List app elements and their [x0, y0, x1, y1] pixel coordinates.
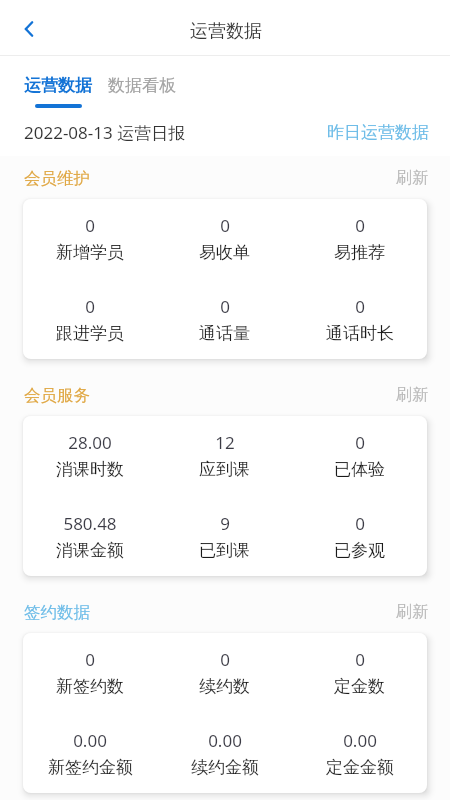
button[interactable]: 昨日运营数据: [327, 122, 429, 143]
staticText: 2022-08-13 运营日报: [24, 121, 186, 144]
staticText: 已参观: [334, 540, 385, 561]
staticText: 0.00: [208, 729, 242, 752]
button[interactable]: 0: [23, 295, 157, 344]
button[interactable]: 0: [157, 295, 292, 344]
staticText: 消课时数: [56, 459, 124, 480]
staticText: 跟进学员: [56, 323, 124, 344]
staticText: 已体验: [334, 459, 385, 480]
staticText: 0.00: [73, 729, 107, 752]
staticText: 0: [355, 512, 365, 535]
staticText: 通话量: [199, 323, 250, 344]
staticText: 刷新: [396, 385, 428, 405]
staticText: 刷新: [396, 168, 428, 188]
staticText: 定金金额: [326, 757, 394, 778]
staticText: 应到课: [199, 459, 250, 480]
button[interactable]: 刷新: [394, 381, 430, 409]
staticText: 新增学员: [56, 242, 124, 263]
staticText: 易收单: [199, 242, 250, 263]
button[interactable]: Back: [0, 0, 56, 55]
staticText: 9: [220, 512, 230, 535]
button[interactable]: 0: [292, 512, 427, 561]
staticText: 通话时长: [326, 323, 394, 344]
staticText: 0: [355, 648, 365, 671]
staticText: 已到课: [199, 540, 250, 561]
button[interactable]: 刷新: [394, 598, 430, 626]
button[interactable]: 0: [292, 295, 427, 344]
staticText: 0: [220, 648, 230, 671]
button[interactable]: 0: [23, 214, 157, 263]
staticText: 0: [355, 295, 365, 318]
button[interactable]: 0: [23, 648, 157, 697]
staticText: 0: [355, 214, 365, 237]
button[interactable]: 28.00: [23, 431, 157, 480]
button[interactable]: 0: [292, 214, 427, 263]
staticText: 0.00: [343, 729, 377, 752]
button[interactable]: 0: [292, 648, 427, 697]
staticText: 0: [85, 214, 95, 237]
button[interactable]: 0: [157, 648, 292, 697]
staticText: 0: [220, 214, 230, 237]
button[interactable]: 运营数据: [24, 56, 92, 115]
staticText: 刷新: [396, 602, 428, 622]
staticText: 运营数据: [24, 75, 92, 96]
staticText: 新签约数: [56, 676, 124, 697]
staticText: 昨日运营数据: [327, 122, 429, 143]
button[interactable]: 12: [157, 431, 292, 480]
staticText: 续约数: [199, 676, 250, 697]
button[interactable]: 数据看板: [108, 56, 176, 96]
button[interactable]: 9: [157, 512, 292, 561]
staticText: 28.00: [68, 431, 112, 454]
staticText: 易推荐: [334, 242, 385, 263]
staticText: 定金数: [334, 676, 385, 697]
staticText: 0: [220, 295, 230, 318]
button[interactable]: 0.00: [157, 729, 292, 778]
staticText: 续约金额: [191, 757, 259, 778]
staticText: 运营数据: [190, 20, 262, 43]
staticText: 新签约金额: [48, 757, 133, 778]
staticText: 会员维护: [24, 168, 90, 189]
staticText: 0: [85, 648, 95, 671]
staticText: 会员服务: [24, 385, 90, 406]
staticText: 消课金额: [56, 540, 124, 561]
button[interactable]: 0.00: [292, 729, 427, 778]
staticText: 签约数据: [24, 602, 90, 623]
staticText: 12: [215, 431, 235, 454]
button[interactable]: 刷新: [394, 164, 430, 192]
staticText: 580.48: [63, 512, 117, 535]
button[interactable]: 0: [292, 431, 427, 480]
staticText: 0: [355, 431, 365, 454]
button[interactable]: 580.48: [23, 512, 157, 561]
staticText: 0: [85, 295, 95, 318]
button[interactable]: 0: [157, 214, 292, 263]
button[interactable]: 0.00: [23, 729, 157, 778]
staticText: 数据看板: [108, 75, 176, 96]
